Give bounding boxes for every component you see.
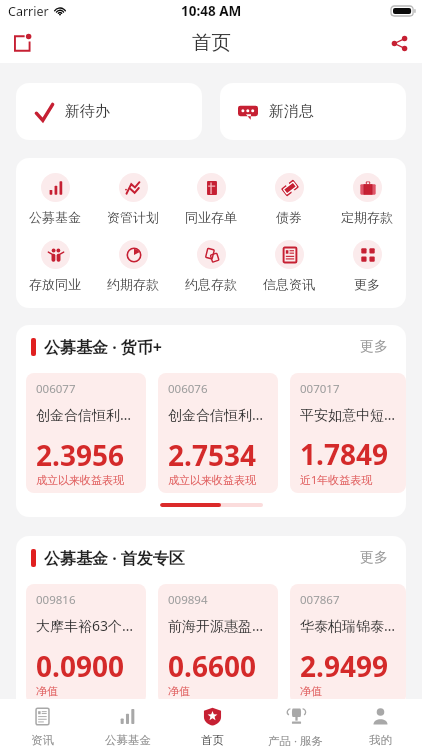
- button[interactable]: 更多: [360, 340, 388, 358]
- button[interactable]: Scan code: [5, 23, 41, 59]
- staticText: 创金合信恒利…: [168, 405, 264, 424]
- staticText: 产品 · 服务: [268, 733, 324, 749]
- staticText: 成立以来收益表现: [168, 473, 256, 487]
- button[interactable]: 资讯: [0, 699, 85, 750]
- button[interactable]: 同业存单: [172, 173, 250, 225]
- button[interactable]: Share: [381, 25, 417, 61]
- staticText: 资管计划: [107, 209, 159, 225]
- staticText: 009894: [168, 592, 208, 608]
- button[interactable]: 007017: [290, 373, 406, 493]
- button[interactable]: 更多: [328, 240, 406, 292]
- staticText: 0.6600: [168, 647, 256, 685]
- button[interactable]: 新消息: [220, 83, 406, 140]
- button[interactable]: 债券: [250, 173, 328, 225]
- staticText: 约息存款: [185, 276, 237, 292]
- staticText: 007867: [300, 592, 340, 608]
- button[interactable]: 006077: [26, 373, 146, 493]
- staticText: 净值: [300, 684, 322, 698]
- button[interactable]: 定期存款: [328, 173, 406, 225]
- staticText: 更多: [354, 276, 380, 292]
- staticText: 更多: [360, 338, 388, 356]
- button[interactable]: 约息存款: [172, 240, 250, 292]
- button[interactable]: 首页: [170, 699, 254, 750]
- staticText: 存放同业: [29, 276, 81, 292]
- button[interactable]: 公募基金: [85, 699, 170, 750]
- button[interactable]: 资管计划: [94, 173, 172, 225]
- staticText: 大摩丰裕63个…: [36, 616, 134, 635]
- staticText: 2.9499: [300, 647, 388, 685]
- staticText: 1.7849: [300, 435, 388, 473]
- button[interactable]: 存放同业: [16, 240, 94, 292]
- staticText: 2.7534: [168, 436, 256, 474]
- staticText: 资讯: [31, 733, 54, 747]
- staticText: 债券: [276, 209, 302, 225]
- staticText: 同业存单: [185, 209, 237, 225]
- button[interactable]: 更多: [360, 551, 388, 569]
- staticText: 首页: [192, 30, 231, 55]
- staticText: 平安如意中短…: [300, 405, 396, 424]
- staticText: 009816: [36, 592, 76, 608]
- button[interactable]: 产品 · 服务: [254, 699, 338, 750]
- button[interactable]: 信息资讯: [250, 240, 328, 292]
- staticText: 近1年收益表现: [300, 472, 373, 487]
- staticText: 净值: [36, 684, 58, 698]
- button[interactable]: 我的: [338, 699, 422, 750]
- button[interactable]: 007867: [290, 584, 406, 704]
- staticText: 006077: [36, 381, 76, 397]
- staticText: 公募基金: [105, 733, 151, 747]
- staticText: 0.0900: [36, 647, 124, 685]
- staticText: 006076: [168, 381, 208, 397]
- button[interactable]: 公募基金: [16, 173, 94, 225]
- staticText: 10:48 AM: [181, 2, 242, 20]
- staticText: 首页: [201, 733, 224, 747]
- staticText: 新消息: [269, 102, 314, 121]
- staticText: 新待办: [65, 102, 110, 121]
- button[interactable]: 新待办: [16, 83, 202, 140]
- staticText: 公募基金 · 货币+: [44, 336, 162, 358]
- staticText: 华泰柏瑞锦泰…: [300, 616, 396, 635]
- staticText: 2.3956: [36, 436, 124, 474]
- staticText: 约期存款: [107, 276, 159, 292]
- button[interactable]: 006076: [158, 373, 278, 493]
- button[interactable]: 009894: [158, 584, 278, 704]
- staticText: 公募基金 · 首发专区: [44, 547, 185, 569]
- staticText: 公募基金: [29, 209, 81, 225]
- button[interactable]: 009816: [26, 584, 146, 704]
- staticText: 更多: [360, 549, 388, 567]
- staticText: 创金合信恒利…: [36, 405, 132, 424]
- staticText: 信息资讯: [263, 276, 315, 292]
- staticText: 成立以来收益表现: [36, 473, 124, 487]
- staticText: 定期存款: [341, 209, 393, 225]
- staticText: 我的: [369, 733, 392, 747]
- staticText: Carrier: [8, 3, 49, 20]
- staticText: 007017: [300, 381, 340, 397]
- button[interactable]: 约期存款: [94, 240, 172, 292]
- staticText: 前海开源惠盈…: [168, 616, 264, 635]
- staticText: 净值: [168, 684, 190, 698]
